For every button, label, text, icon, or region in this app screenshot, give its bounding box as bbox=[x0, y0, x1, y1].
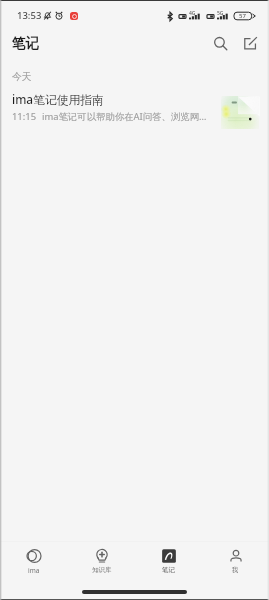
staticText: 4G bbox=[189, 10, 196, 17]
staticText: 11:15 bbox=[12, 110, 37, 123]
staticText: 今天 bbox=[12, 71, 32, 83]
button[interactable]: 我 bbox=[202, 549, 269, 574]
button[interactable]: Search bbox=[207, 30, 233, 56]
staticText: ima笔记使用指南 bbox=[12, 91, 104, 107]
staticText: ima笔记可以帮助你在AI问答、浏览网… bbox=[42, 110, 207, 123]
staticText: ima bbox=[28, 566, 40, 575]
button[interactable]: New note bbox=[237, 30, 263, 56]
staticText: 我 bbox=[232, 566, 239, 574]
staticText: 知识库 bbox=[92, 566, 112, 574]
staticText: 13:53 bbox=[17, 9, 42, 22]
staticText: 笔记 bbox=[162, 566, 175, 574]
staticText: 57 bbox=[239, 12, 246, 20]
staticText: 笔记 bbox=[12, 35, 39, 52]
button[interactable]: 知识库 bbox=[68, 549, 135, 574]
button[interactable]: 笔记 bbox=[135, 549, 202, 574]
staticText: 5G bbox=[217, 10, 224, 17]
button[interactable]: ima笔记使用指南 bbox=[0, 83, 269, 132]
button[interactable]: ima bbox=[0, 549, 68, 575]
